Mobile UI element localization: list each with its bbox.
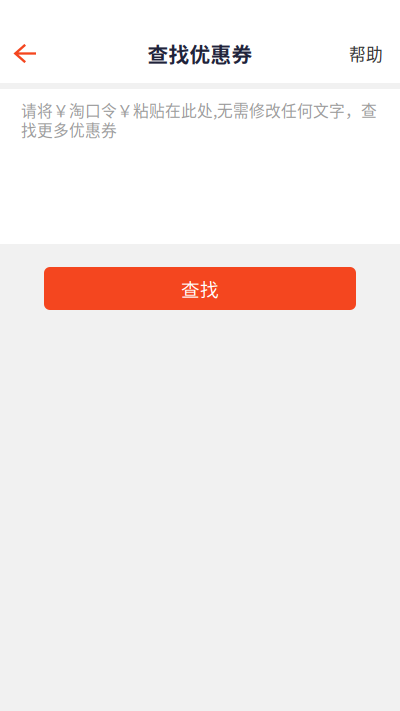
- staticText: 查找优惠券: [147, 38, 252, 68]
- staticText: 帮助: [349, 41, 383, 65]
- button[interactable]: Back: [0, 30, 49, 76]
- staticText: 查找: [181, 275, 219, 302]
- button[interactable]: 查找: [44, 267, 356, 310]
- staticText: 请将￥淘口令￥粘贴在此处,无需修改任何文字，查找更多优惠券: [21, 100, 377, 139]
- button[interactable]: 帮助: [335, 27, 400, 79]
